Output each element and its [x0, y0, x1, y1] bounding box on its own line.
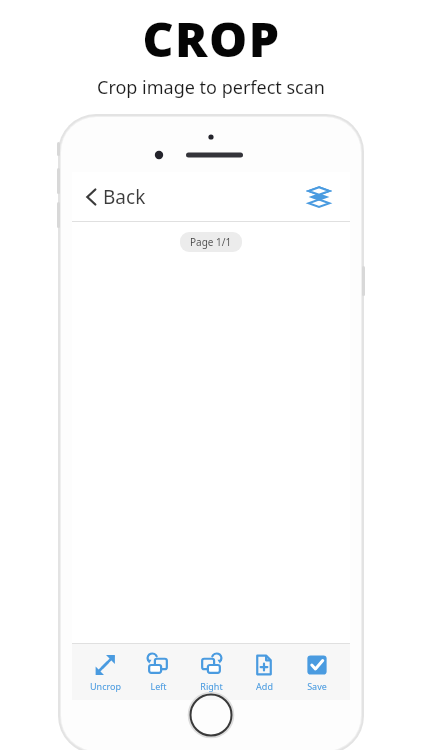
- staticText: Page 1/1: [190, 235, 232, 249]
- button[interactable]: Left: [134, 649, 182, 695]
- staticText: CROP: [142, 6, 281, 71]
- button[interactable]: Page 1/1: [180, 232, 242, 252]
- button[interactable]: Uncrop: [81, 649, 129, 695]
- staticText: Uncrop: [90, 680, 121, 692]
- staticText: Crop image to perfect scan: [97, 75, 325, 100]
- staticText: Save: [307, 680, 327, 692]
- button[interactable]: Home: [188, 692, 234, 738]
- button[interactable]: Right: [187, 649, 235, 695]
- button[interactable]: Save: [293, 649, 341, 695]
- staticText: Left: [150, 680, 167, 692]
- staticText: Right: [200, 680, 223, 692]
- button[interactable]: Back: [80, 178, 152, 216]
- button[interactable]: Layers: [302, 181, 336, 213]
- staticText: Add: [256, 680, 273, 692]
- staticText: Back: [103, 184, 146, 210]
- button[interactable]: Add: [240, 649, 288, 695]
